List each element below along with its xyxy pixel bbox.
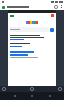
button[interactable]: Search: [10, 27, 54, 32]
button[interactable]: Back: [2, 87, 6, 91]
button[interactable]: Search: [50, 28, 54, 32]
button[interactable]: Reload: [0, 4, 64, 10]
button[interactable]: Reload: [54, 5, 58, 9]
button[interactable]: Home: [29, 93, 35, 99]
button[interactable]: Recents: [47, 93, 53, 99]
button[interactable]: Tabs: [30, 87, 34, 91]
button[interactable]: Back: [12, 93, 18, 99]
button[interactable]: Menu: [58, 87, 62, 91]
button[interactable]: More options: [59, 5, 63, 9]
